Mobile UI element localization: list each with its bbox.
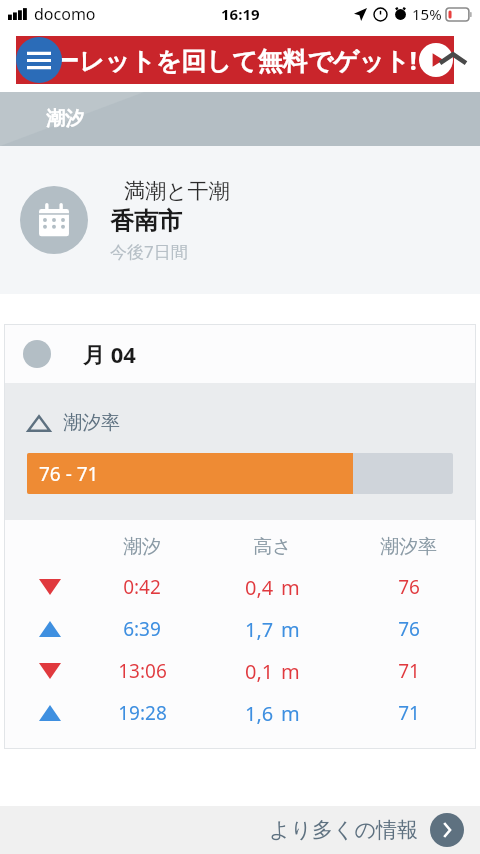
staticText: 高さ [253,535,292,559]
staticText: m [281,700,300,727]
button[interactable]: Advertisement banner [0,28,480,92]
staticText: 6:39 [123,616,161,642]
button[interactable]: Low tide [5,650,475,692]
other: Low tide [39,663,61,679]
staticText: docomo [34,3,96,25]
button[interactable]: 月 04 [5,325,475,383]
staticText: 15% [412,4,442,24]
other: Low tide [39,579,61,595]
button[interactable]: Low tide [5,566,475,608]
staticText: m [281,616,300,643]
staticText: 満潮と干潮 [124,178,230,204]
staticText: 16:19 [221,4,260,24]
staticText: 76 - 71 [39,461,99,487]
staticText: 潮汐 [46,107,84,131]
staticText: より多くの情報 [269,817,418,843]
staticText: 0:42 [123,574,161,600]
staticText: 潮汐率 [63,411,120,435]
staticText: 76 [398,616,420,642]
staticText: 1,7 [245,616,274,643]
staticText: 19:28 [118,700,167,726]
staticText: m [281,574,300,601]
staticText: 潮汐 [123,535,161,559]
button[interactable]: High tide [5,608,475,650]
staticText: 71 [398,700,420,726]
staticText: 71 [398,658,420,684]
staticText: 潮汐率 [380,535,437,559]
staticText: 0,1 [245,658,274,685]
button[interactable]: Menu [16,37,62,83]
button[interactable]: 満潮と干潮 [0,146,480,294]
button[interactable]: より多くの情報 [0,806,480,854]
staticText: ーレットを回して無料でゲット! [54,43,417,77]
button[interactable]: High tide [5,692,475,734]
staticText: 0,4 [245,574,274,601]
staticText: m [281,658,300,685]
other: High tide [39,621,61,637]
staticText: 76 [398,574,420,600]
staticText: 1,6 [245,700,274,727]
staticText: 今後7日間 [110,240,188,263]
staticText: 香南市 [110,206,182,236]
staticText: 月 04 [83,339,136,369]
other: High tide [39,705,61,721]
staticText: 13:06 [118,658,167,684]
